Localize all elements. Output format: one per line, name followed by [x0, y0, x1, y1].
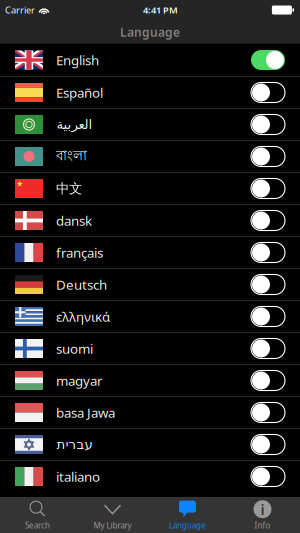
button[interactable]: italiano: [0, 460, 300, 492]
staticText: Search: [25, 520, 50, 531]
staticText: Carrier: [5, 4, 35, 16]
staticText: My Library: [93, 520, 131, 531]
button[interactable]: dansk: [0, 204, 300, 236]
staticText: basa Jawa: [56, 404, 115, 421]
staticText: i: [260, 499, 264, 519]
button[interactable]: Español: [0, 76, 300, 108]
staticText: বাংলা: [56, 147, 87, 166]
staticText: עברית: [56, 437, 92, 452]
staticText: Language: [120, 24, 180, 40]
button[interactable]: ελληνικά: [0, 300, 300, 332]
button[interactable]: English: [0, 44, 300, 76]
button[interactable]: magyar: [0, 364, 300, 396]
staticText: français: [56, 244, 103, 261]
staticText: dansk: [56, 212, 92, 229]
button[interactable]: العربية: [0, 108, 300, 140]
button[interactable]: 中文: [0, 172, 300, 204]
staticText: Español: [56, 84, 103, 101]
staticText: English: [56, 51, 99, 69]
button[interactable]: français: [0, 236, 300, 268]
button[interactable]: basa Jawa: [0, 396, 300, 428]
staticText: ελληνικά: [56, 308, 110, 325]
button[interactable]: বাংলা: [0, 140, 300, 172]
staticText: Info: [254, 520, 270, 531]
staticText: magyar: [56, 372, 103, 389]
button[interactable]: suomi: [0, 332, 300, 364]
staticText: 中文: [56, 180, 82, 197]
staticText: Deutsch: [56, 276, 107, 293]
button[interactable]: עברית: [0, 428, 300, 460]
button[interactable]: My Library: [75, 497, 150, 533]
staticText: suomi: [56, 340, 93, 357]
button[interactable]: Language: [150, 497, 225, 533]
button[interactable]: i: [225, 497, 300, 533]
staticText: العربية: [56, 117, 92, 132]
staticText: Language: [169, 520, 206, 531]
staticText: 4:41 PM: [143, 4, 178, 16]
staticText: italiano: [56, 468, 100, 485]
button[interactable]: Deutsch: [0, 268, 300, 300]
button[interactable]: Search: [0, 497, 75, 533]
